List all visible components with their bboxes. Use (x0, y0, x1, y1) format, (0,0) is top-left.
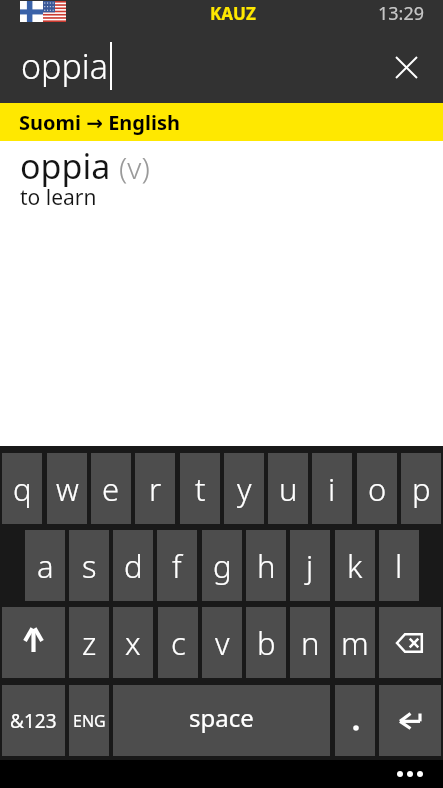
staticText: o (368, 468, 387, 510)
staticText: Suomi → English (19, 109, 180, 136)
button[interactable]: n (290, 607, 330, 678)
staticText: v (215, 622, 230, 664)
staticText: k (347, 545, 363, 587)
button[interactable]: k (335, 530, 375, 601)
staticText: (v) (119, 147, 150, 188)
staticText: j (306, 545, 314, 587)
staticText: u (279, 468, 298, 510)
staticText: &123 (10, 708, 57, 734)
staticText: d (124, 545, 143, 587)
staticText: 13:29 (378, 1, 425, 26)
button[interactable]: r (135, 453, 175, 524)
staticText: i (328, 468, 336, 510)
button[interactable]: a (25, 530, 65, 601)
button[interactable]: ENG (69, 685, 109, 756)
staticText: m (341, 622, 369, 664)
staticText: x (125, 622, 141, 664)
button[interactable]: s (69, 530, 109, 601)
staticText: c (171, 622, 186, 664)
staticText: g (213, 545, 232, 587)
button[interactable]: c (158, 607, 198, 678)
staticText: p (412, 468, 431, 510)
button[interactable]: space (113, 685, 330, 756)
staticText: z (82, 622, 97, 664)
button[interactable]: o (357, 453, 397, 524)
button[interactable] (379, 685, 441, 756)
button[interactable]: d (113, 530, 153, 601)
button[interactable]: x (113, 607, 153, 678)
button[interactable]: j (290, 530, 330, 601)
staticText: ENG (73, 710, 106, 732)
button[interactable]: e (91, 453, 131, 524)
button[interactable] (2, 607, 65, 678)
button[interactable]: p (401, 453, 441, 524)
staticText: a (37, 545, 54, 587)
button[interactable]: f (157, 530, 197, 601)
button[interactable] (397, 771, 423, 777)
button[interactable]: q (2, 453, 42, 524)
button[interactable]: t (180, 453, 220, 524)
staticText: n (301, 622, 320, 664)
button[interactable] (335, 685, 375, 756)
staticText: e (102, 468, 120, 510)
staticText: to learn (20, 183, 97, 212)
button[interactable]: y (224, 453, 264, 524)
button[interactable]: g (202, 530, 242, 601)
staticText: t (195, 468, 206, 510)
staticText: y (237, 468, 252, 510)
button[interactable]: Suomi → English (0, 103, 443, 141)
button[interactable]: h (246, 530, 286, 601)
button[interactable]: z (69, 607, 109, 678)
staticText: space (189, 701, 254, 734)
button[interactable]: i (312, 453, 352, 524)
button[interactable]: v (202, 607, 242, 678)
staticText: oppia (20, 143, 111, 189)
button[interactable]: l (379, 530, 419, 601)
staticText: f (172, 545, 182, 587)
button[interactable]: u (268, 453, 308, 524)
staticText: q (13, 468, 32, 510)
button[interactable] (391, 52, 421, 82)
button[interactable]: m (335, 607, 375, 678)
button[interactable]: &123 (2, 685, 65, 756)
staticText: KAUZ (210, 2, 256, 25)
staticText: r (149, 468, 162, 510)
staticText: l (395, 545, 403, 587)
staticText: b (257, 622, 276, 664)
button[interactable]: w (47, 453, 87, 524)
button[interactable]: b (246, 607, 286, 678)
staticText: s (82, 545, 97, 587)
staticText: w (56, 468, 79, 510)
staticText: h (257, 545, 276, 587)
staticText: oppia (21, 43, 108, 89)
button[interactable] (379, 607, 441, 678)
